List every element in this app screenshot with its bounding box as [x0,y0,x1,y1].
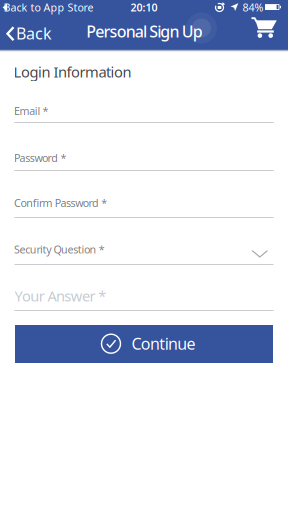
staticText: Personal Sign Up [86,21,203,42]
button[interactable]: Back to App Store [0,0,92,15]
staticText: 84% [242,0,263,14]
staticText: Continue [131,333,196,354]
staticText: Login Information [13,62,131,81]
staticText: Back to App Store [3,0,93,14]
staticText: Your Answer * [14,286,106,305]
staticText: Email * [14,104,49,118]
button[interactable]: Continue [15,325,273,363]
staticText: Security Question * [14,242,105,256]
staticText: Confirm Password * [14,196,107,210]
button[interactable]: Cart [247,14,281,42]
button[interactable]: Security Question * [0,238,288,264]
staticText: Password * [14,151,66,165]
staticText: Back [16,23,52,44]
staticText: 20:10 [130,0,157,14]
button[interactable]: Back [4,20,50,46]
